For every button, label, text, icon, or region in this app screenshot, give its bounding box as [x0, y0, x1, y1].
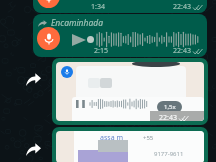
staticText: +55 [143, 134, 154, 142]
staticText: 1,5x [164, 103, 176, 111]
staticText: 9177-9611 [154, 150, 184, 158]
button[interactable]: assa m [56, 131, 204, 162]
button[interactable]: 1,5x [56, 62, 204, 121]
staticText: 1:34 [91, 2, 105, 12]
staticText: 22:43 [173, 2, 191, 12]
staticText: Encaminhada [51, 17, 104, 29]
staticText: 22:43 [173, 46, 191, 56]
staticText: assa m [100, 133, 123, 143]
button[interactable]: 1:34 [33, 0, 207, 13]
button[interactable]: Forward [26, 143, 41, 156]
button[interactable]: Forward [26, 73, 41, 86]
staticText: 2:15 [94, 46, 108, 56]
staticText: 22:43 [159, 113, 177, 121]
button[interactable]: Encaminhada [33, 14, 207, 57]
